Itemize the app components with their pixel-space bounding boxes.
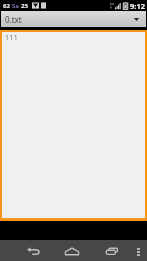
- staticText: 62: [3, 2, 10, 10]
- button[interactable]: 0.txt: [1, 11, 146, 27]
- staticText: 25: [21, 2, 28, 10]
- button[interactable]: Home: [62, 241, 82, 261]
- staticText: Sa: [12, 2, 19, 10]
- button[interactable]: More options: [130, 241, 146, 261]
- staticText: 9:12: [130, 1, 145, 11]
- button[interactable]: Recent apps: [102, 241, 122, 261]
- button[interactable]: Back: [23, 241, 43, 261]
- staticText: 0.txt: [5, 14, 22, 25]
- staticText: 111: [5, 33, 19, 43]
